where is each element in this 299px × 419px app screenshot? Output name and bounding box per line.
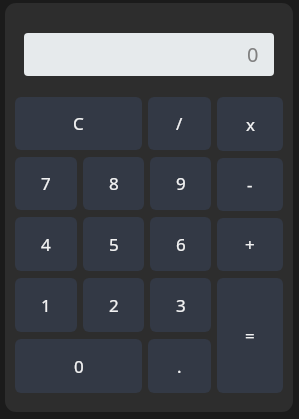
staticText: 0 xyxy=(74,355,84,378)
button[interactable]: + xyxy=(217,218,283,271)
button[interactable]: 7 xyxy=(15,157,77,210)
staticText: 9 xyxy=(176,172,186,195)
button[interactable]: / xyxy=(148,97,211,150)
button[interactable]: 0 xyxy=(24,33,274,76)
staticText: 4 xyxy=(41,233,51,256)
staticText: - xyxy=(247,173,253,196)
button[interactable]: 5 xyxy=(83,217,144,271)
button[interactable]: . xyxy=(148,339,211,393)
button[interactable]: = xyxy=(217,278,283,393)
staticText: 5 xyxy=(109,233,119,256)
button[interactable]: C xyxy=(15,97,142,150)
staticText: 7 xyxy=(41,172,51,195)
button[interactable]: 8 xyxy=(83,157,144,210)
staticText: / xyxy=(176,112,183,135)
staticText: 1 xyxy=(41,294,51,317)
staticText: + xyxy=(245,233,255,256)
button[interactable]: x xyxy=(217,97,283,151)
staticText: C xyxy=(73,112,84,135)
staticText: x xyxy=(246,113,255,136)
button[interactable]: 2 xyxy=(83,278,144,332)
button[interactable]: 0 xyxy=(15,339,142,393)
button[interactable]: 3 xyxy=(150,278,211,332)
button[interactable]: 6 xyxy=(150,217,211,271)
staticText: = xyxy=(245,324,255,347)
staticText: 8 xyxy=(109,172,119,195)
staticText: . xyxy=(177,355,182,378)
button[interactable]: 9 xyxy=(150,157,211,210)
button[interactable]: 1 xyxy=(15,278,77,332)
staticText: 2 xyxy=(109,294,119,317)
button[interactable]: - xyxy=(217,158,283,211)
button[interactable]: 4 xyxy=(15,217,77,271)
staticText: 6 xyxy=(176,233,186,256)
staticText: 3 xyxy=(176,294,186,317)
staticText: 0 xyxy=(247,41,259,68)
